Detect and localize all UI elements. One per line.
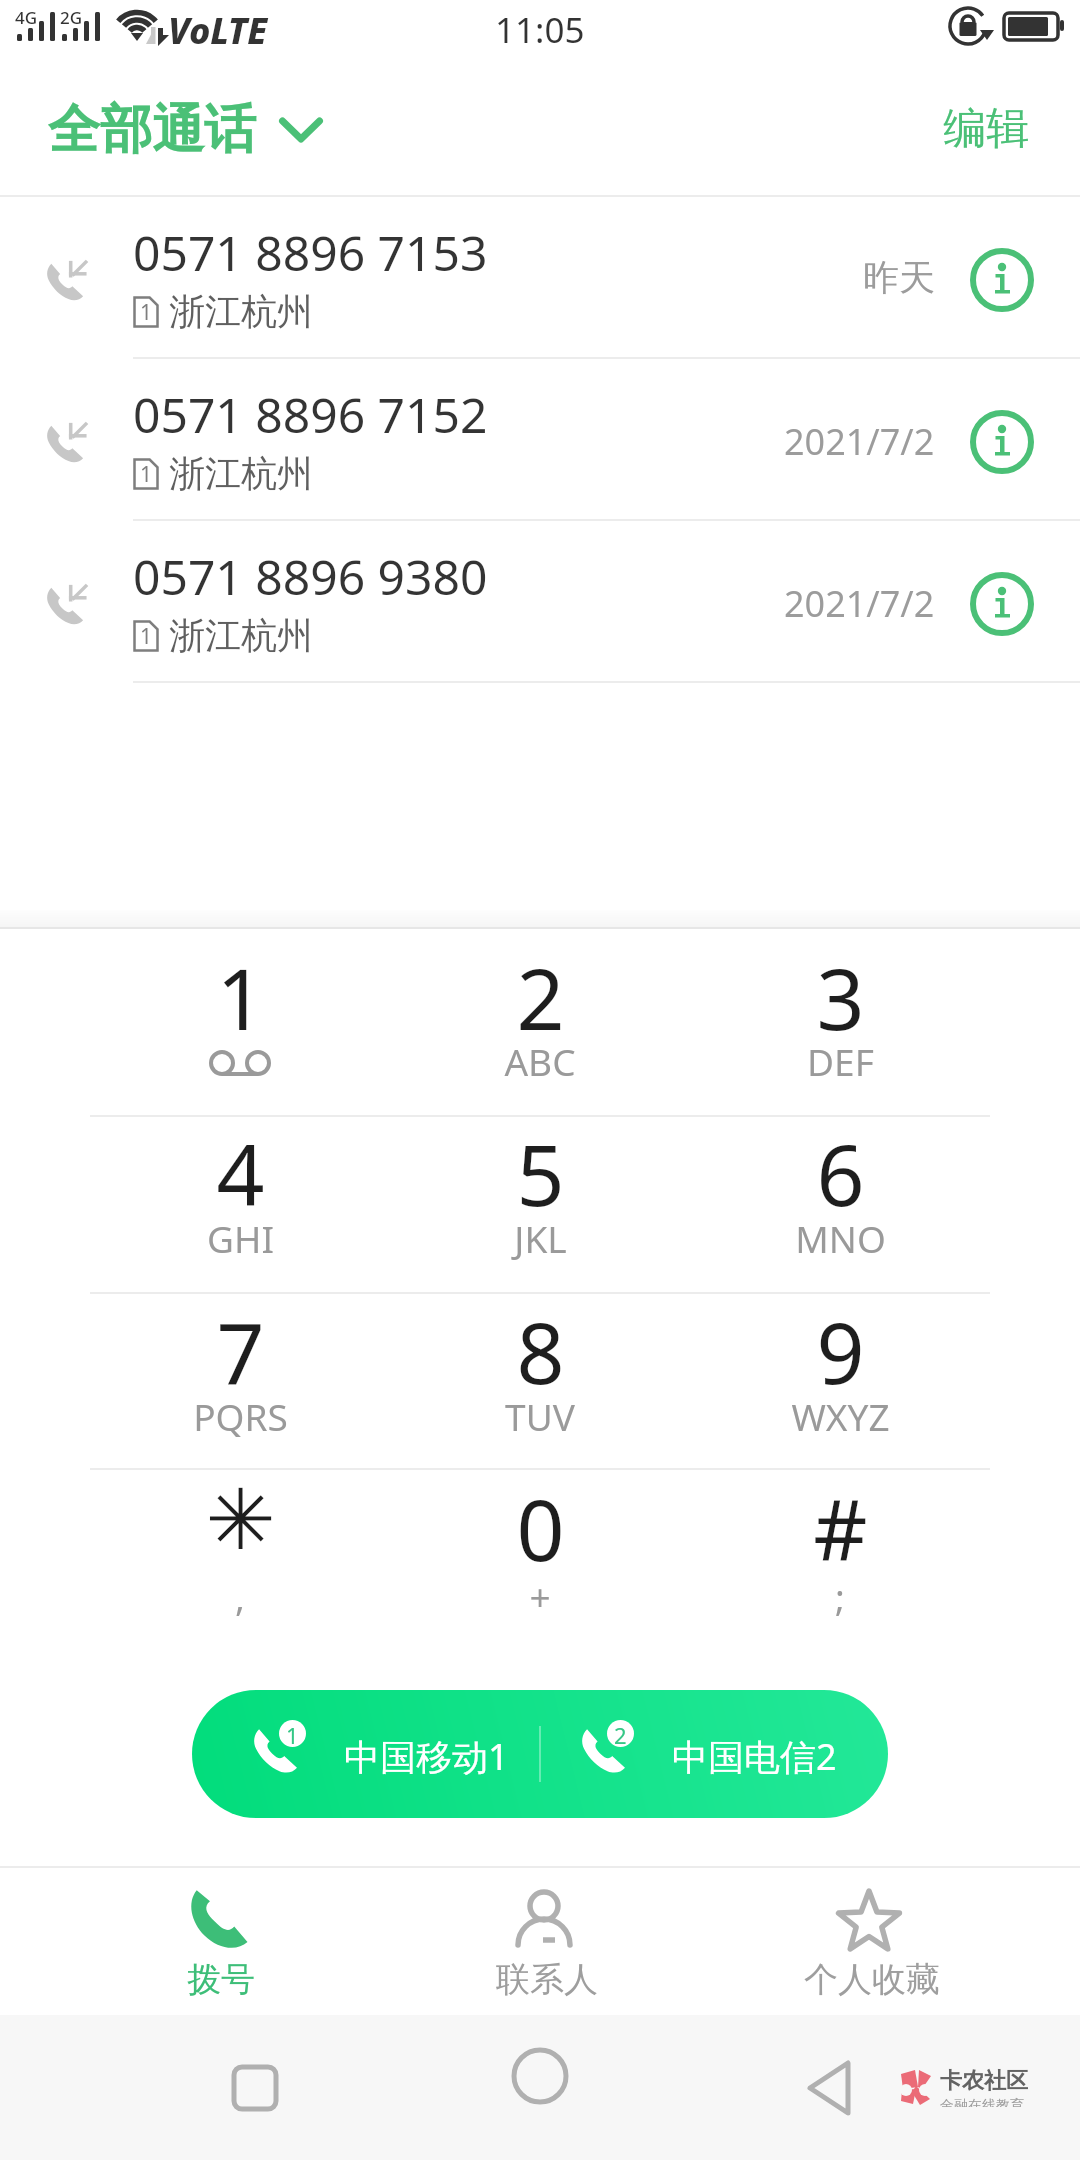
button[interactable]: 8 bbox=[390, 1294, 690, 1468]
staticText: 金融在线教育 bbox=[940, 2097, 1024, 2107]
staticText: 浙江杭州 bbox=[169, 613, 313, 658]
button[interactable]: 1 bbox=[90, 929, 390, 1115]
button[interactable]: 2 bbox=[541, 1690, 888, 1818]
staticText: 11:05 bbox=[495, 6, 585, 54]
staticText: 7 bbox=[216, 1294, 265, 1408]
button[interactable]: 编辑 bbox=[911, 90, 1061, 168]
button[interactable]: 5 bbox=[390, 1117, 690, 1292]
staticText: 2 bbox=[614, 1720, 627, 1747]
staticText: 1 bbox=[140, 298, 153, 327]
button[interactable]: 0 bbox=[390, 1470, 690, 1647]
button[interactable]: 联系人 bbox=[384, 1866, 709, 2015]
staticText: 1 bbox=[140, 622, 153, 651]
staticText: 0571 8896 9380 bbox=[133, 544, 488, 609]
staticText: MNO bbox=[795, 1213, 886, 1263]
staticText: + bbox=[529, 1571, 551, 1621]
staticText: VoLTE bbox=[168, 6, 268, 55]
staticText: 中国移动1 bbox=[344, 1732, 509, 1781]
staticText: 个人收藏 bbox=[804, 1958, 940, 2001]
button[interactable]: 7 bbox=[90, 1294, 390, 1468]
button[interactable]: 拨号 bbox=[58, 1866, 384, 2015]
staticText: 联系人 bbox=[496, 1958, 598, 2001]
staticText: 2G bbox=[60, 6, 83, 29]
staticText: 卡农社区 bbox=[940, 2067, 1028, 2095]
staticText: 昨天 bbox=[863, 255, 935, 300]
staticText: TUV bbox=[505, 1391, 575, 1441]
staticText: WXYZ bbox=[791, 1391, 890, 1441]
staticText: ABC bbox=[504, 1036, 576, 1086]
button[interactable]: 6 bbox=[690, 1117, 990, 1292]
staticText: 1 bbox=[286, 1720, 299, 1747]
staticText: 0 bbox=[516, 1471, 565, 1585]
button[interactable]: Home bbox=[480, 2016, 600, 2136]
button[interactable]: 0571 8896 7153 bbox=[0, 197, 1080, 359]
button[interactable]: 0571 8896 7152 bbox=[0, 359, 1080, 521]
staticText: 全部通话 bbox=[48, 97, 256, 163]
staticText: 2021/7/2 bbox=[784, 417, 935, 466]
staticText: PQRS bbox=[193, 1391, 288, 1441]
staticText: 中国电信2 bbox=[672, 1732, 837, 1781]
staticText: ; bbox=[835, 1571, 845, 1621]
staticText: 1 bbox=[216, 940, 265, 1054]
staticText: 4G bbox=[15, 6, 38, 29]
button[interactable]: 0571 8896 9380 bbox=[0, 521, 1080, 683]
button[interactable]: 9 bbox=[690, 1294, 990, 1468]
button[interactable]: 4 bbox=[90, 1117, 390, 1292]
staticText: 8 bbox=[516, 1294, 565, 1408]
button[interactable]: 全部通话 bbox=[24, 87, 347, 173]
staticText: 3 bbox=[816, 940, 865, 1054]
staticText: 2021/7/2 bbox=[784, 579, 935, 628]
button[interactable]: Recents bbox=[195, 2028, 315, 2148]
staticText: # bbox=[813, 1471, 868, 1585]
button[interactable]: # bbox=[690, 1470, 990, 1647]
staticText: DEF bbox=[807, 1036, 874, 1086]
staticText: 1 bbox=[140, 460, 153, 489]
button[interactable]: 个人收藏 bbox=[709, 1866, 1034, 2015]
staticText: 编辑 bbox=[943, 102, 1029, 156]
staticText: 拨号 bbox=[187, 1958, 255, 2001]
button[interactable]: Call details bbox=[969, 571, 1035, 637]
staticText: 浙江杭州 bbox=[169, 451, 313, 496]
staticText: 浙江杭州 bbox=[169, 289, 313, 334]
staticText: 2 bbox=[516, 940, 565, 1054]
button[interactable]: Back bbox=[770, 2028, 890, 2148]
button[interactable]: 1 bbox=[192, 1690, 539, 1818]
button[interactable]: Call details bbox=[969, 247, 1035, 313]
staticText: 6 bbox=[816, 1116, 865, 1230]
staticText: 0571 8896 7152 bbox=[133, 382, 488, 447]
staticText: 5 bbox=[516, 1116, 565, 1230]
staticText: 0571 8896 7153 bbox=[133, 220, 488, 285]
staticText: JKL bbox=[514, 1213, 567, 1263]
staticText: 9 bbox=[816, 1294, 865, 1408]
button[interactable]: Call details bbox=[969, 409, 1035, 475]
staticText: 4 bbox=[216, 1116, 265, 1230]
staticText: GHI bbox=[207, 1213, 274, 1263]
button[interactable]: 3 bbox=[690, 929, 990, 1115]
staticText: , bbox=[235, 1571, 245, 1621]
staticText: ✳ bbox=[205, 1471, 276, 1569]
button[interactable]: ✳ bbox=[90, 1470, 390, 1647]
button[interactable]: 2 bbox=[390, 929, 690, 1115]
